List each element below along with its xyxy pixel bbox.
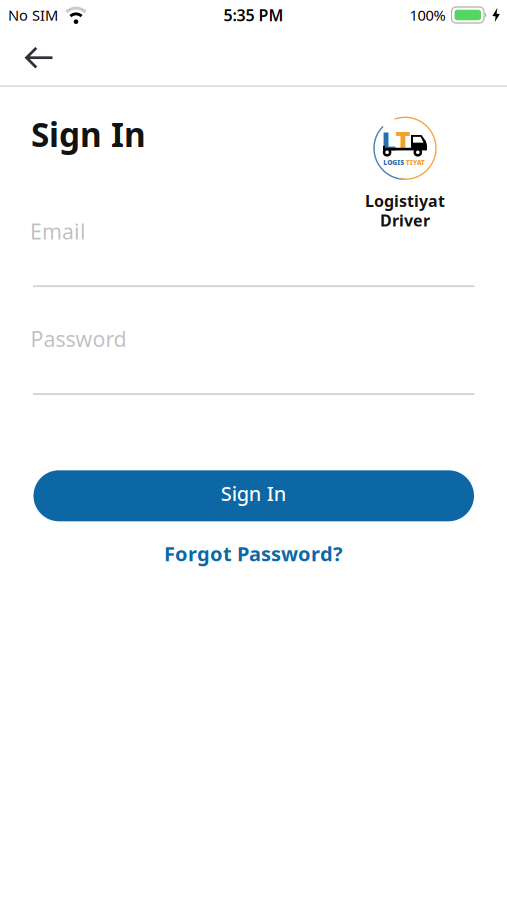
- button[interactable]: Password: [0, 324, 507, 395]
- button[interactable]: Email: [0, 217, 507, 287]
- button[interactable]: Back: [0, 37, 63, 79]
- staticText: Logistiyat: [365, 190, 445, 211]
- staticText: 5:35 PM: [223, 4, 283, 26]
- staticText: LOGIS: [383, 158, 404, 167]
- staticText: TIYAT: [406, 158, 425, 167]
- staticText: L: [381, 124, 396, 157]
- staticText: No SIM: [8, 5, 58, 25]
- button[interactable]: Forgot Password?: [164, 540, 343, 567]
- staticText: T: [395, 123, 410, 157]
- staticText: 100%: [409, 5, 445, 25]
- staticText: Password: [30, 324, 126, 353]
- button[interactable]: Sign In: [0, 470, 507, 521]
- staticText: Driver: [380, 210, 430, 231]
- staticText: Sign In: [221, 480, 287, 507]
- staticText: Sign In: [31, 112, 146, 156]
- staticText: Forgot Password?: [164, 540, 343, 567]
- staticText: Email: [30, 217, 86, 245]
